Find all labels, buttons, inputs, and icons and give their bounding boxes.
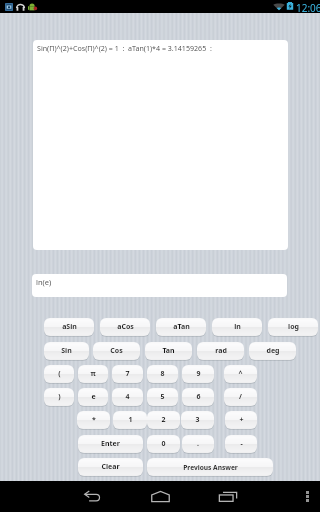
staticText: ( — [58, 369, 61, 379]
button[interactable]: aSin — [44, 318, 94, 336]
staticText: aTan — [173, 322, 190, 332]
staticText: 6 — [196, 392, 201, 402]
button[interactable]: 3 — [181, 411, 214, 429]
button[interactable]: 1 — [113, 411, 147, 429]
button[interactable]: 8 — [147, 365, 178, 383]
button[interactable]: + — [225, 411, 257, 429]
button[interactable]: More options — [294, 486, 320, 507]
button[interactable]: 9 — [182, 365, 214, 383]
staticText: . — [197, 439, 199, 449]
button[interactable]: Enter — [78, 435, 143, 453]
staticText: 5 — [160, 392, 165, 402]
staticText: ln(e) — [36, 277, 52, 287]
staticText: 1 — [128, 415, 133, 425]
staticText: 2 — [161, 415, 166, 425]
staticText: 12:06 — [296, 1, 320, 14]
button[interactable]: 2 — [147, 411, 180, 429]
button[interactable]: Sin — [44, 342, 89, 360]
button[interactable]: 6 — [182, 388, 214, 406]
staticText: ) — [58, 392, 61, 402]
button[interactable]: Back — [74, 486, 110, 507]
button[interactable]: log — [268, 318, 318, 336]
staticText: e — [91, 392, 96, 402]
button[interactable]: Clear — [78, 458, 143, 476]
staticText: Clear — [101, 462, 120, 472]
staticText: 3 — [195, 415, 200, 425]
staticText: Tan — [162, 346, 175, 356]
button[interactable]: Recent apps — [210, 486, 246, 507]
button[interactable]: Tan — [145, 342, 192, 360]
staticText: Previous Answer — [183, 463, 238, 472]
staticText: aCos — [117, 322, 134, 332]
staticText: Sin(Π)^(2)+Cos(Π)^(2) = 1 : aTan(1)*4 = … — [37, 43, 212, 53]
button[interactable]: Previous Answer — [147, 458, 273, 476]
staticText: rad — [215, 346, 227, 356]
staticText: aSin — [62, 322, 77, 332]
button[interactable]: rad — [197, 342, 244, 360]
button[interactable]: ln — [212, 318, 262, 336]
button[interactable]: / — [224, 388, 257, 406]
staticText: 4 — [125, 392, 130, 402]
staticText: / — [239, 392, 242, 402]
button[interactable]: Cos — [93, 342, 140, 360]
staticText: ^ — [238, 369, 243, 379]
button[interactable]: aTan — [156, 318, 206, 336]
staticText: 7 — [125, 369, 130, 379]
staticText: 0 — [161, 439, 166, 449]
staticText: ln — [234, 322, 241, 332]
button[interactable]: 4 — [112, 388, 143, 406]
button[interactable]: 0 — [147, 435, 180, 453]
staticText: + — [239, 415, 244, 425]
button[interactable]: ( — [44, 365, 74, 383]
button[interactable]: π — [78, 365, 108, 383]
staticText: deg — [266, 346, 280, 356]
button[interactable]: e — [78, 388, 108, 406]
button[interactable]: 7 — [112, 365, 143, 383]
button[interactable]: - — [225, 435, 257, 453]
button[interactable]: ) — [44, 388, 74, 406]
button[interactable]: ^ — [224, 365, 257, 383]
staticText: Enter — [101, 439, 120, 449]
button[interactable]: aCos — [100, 318, 150, 336]
staticText: - — [240, 439, 243, 449]
staticText: log — [288, 322, 299, 332]
button[interactable]: 5 — [147, 388, 178, 406]
button[interactable]: . — [182, 435, 214, 453]
staticText: π — [90, 369, 96, 379]
button[interactable]: Home — [142, 486, 178, 507]
staticText: Sin — [61, 346, 72, 356]
staticText: * — [92, 415, 96, 425]
button[interactable]: ln(e) — [32, 274, 287, 297]
staticText: 9 — [196, 369, 201, 379]
staticText: 8 — [160, 369, 165, 379]
staticText: Cos — [110, 346, 123, 356]
button[interactable]: * — [77, 411, 110, 429]
button[interactable]: deg — [249, 342, 296, 360]
